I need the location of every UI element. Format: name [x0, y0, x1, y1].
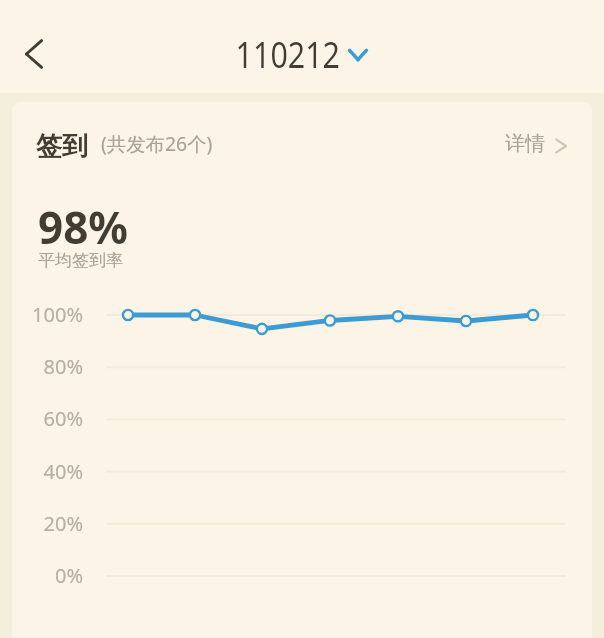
staticText: 平均签到率	[38, 250, 123, 271]
staticText: (共发布26个)	[101, 130, 213, 156]
staticText: 签到	[36, 130, 88, 163]
button[interactable]: 签到	[36, 128, 213, 164]
button[interactable]: 详情	[505, 129, 571, 165]
button[interactable]: 110212	[226, 30, 374, 72]
staticText: 60%	[12, 405, 83, 432]
staticText: 80%	[12, 353, 83, 380]
staticText: 20%	[12, 510, 83, 537]
staticText: 40%	[12, 458, 83, 485]
staticText: 100%	[12, 301, 83, 328]
button[interactable]: Back	[10, 30, 58, 78]
staticText: 0%	[12, 562, 83, 589]
staticText: 98%	[38, 197, 129, 257]
staticText: 110212	[236, 30, 340, 72]
staticText: 详情	[505, 131, 545, 156]
